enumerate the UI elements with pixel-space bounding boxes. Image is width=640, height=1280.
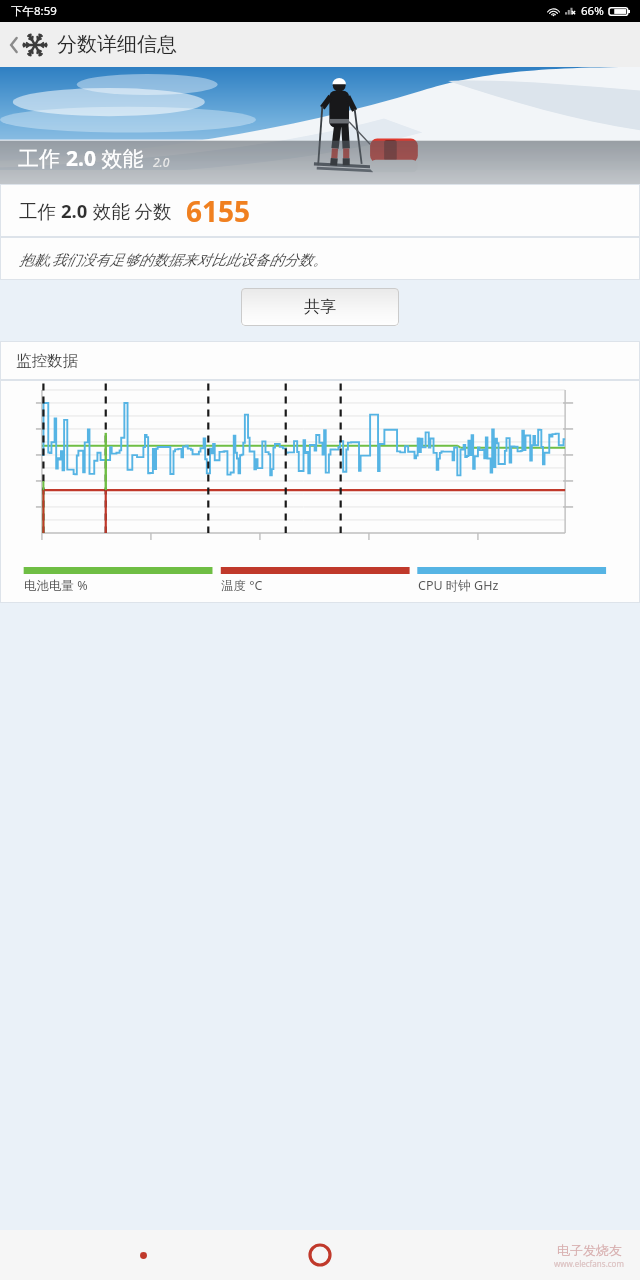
staticText: 电子发烧友: [557, 1242, 622, 1258]
staticText: 66%: [581, 3, 604, 19]
staticText: 6155: [186, 192, 251, 230]
staticText: 温度 °C: [221, 577, 263, 594]
other: Back: [8, 34, 20, 56]
button[interactable]: 工作: [0, 184, 640, 237]
button[interactable]: 共享: [241, 288, 399, 326]
staticText: 2.0: [153, 154, 170, 170]
staticText: 抱歉,我们没有足够的数据来对比此设备的分数。: [19, 249, 328, 269]
button[interactable]: Back: [0, 22, 640, 67]
button[interactable]: 抱歉,我们没有足够的数据来对比此设备的分数。: [0, 237, 640, 280]
staticText: 分数详细信息: [57, 32, 177, 57]
staticText: 工作: [18, 144, 66, 173]
button[interactable]: 监控数据: [0, 341, 640, 380]
staticText: 工作: [19, 198, 61, 223]
staticText: 下午8:59: [11, 3, 57, 19]
staticText: 效能 分数: [88, 198, 172, 223]
staticText: CPU 时钟 GHz: [418, 577, 499, 594]
button[interactable]: Home: [300, 1235, 340, 1275]
staticText: 电池电量 %: [24, 577, 88, 594]
staticText: 共享: [304, 297, 336, 317]
staticText: 效能: [96, 144, 144, 173]
button[interactable]: Recents: [128, 1240, 158, 1270]
staticText: 2.0: [61, 198, 88, 223]
staticText: 2.0: [66, 144, 96, 173]
staticText: www.elecfans.com: [554, 1258, 624, 1269]
staticText: 监控数据: [16, 351, 78, 371]
